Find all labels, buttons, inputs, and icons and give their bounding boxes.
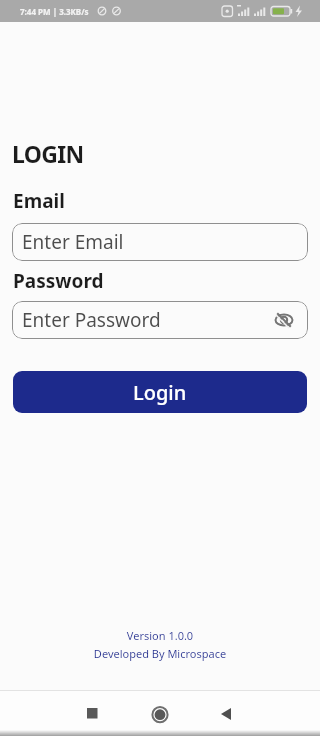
button[interactable] — [217, 707, 235, 725]
staticText: Version 1.0.0 — [0, 628, 320, 643]
staticText: Email — [13, 188, 65, 214]
button[interactable]: Login — [13, 371, 307, 413]
button[interactable] — [151, 705, 169, 723]
staticText: Enter Password — [22, 307, 161, 333]
button[interactable] — [84, 705, 101, 722]
staticText: Login — [133, 379, 187, 406]
staticText: 7:44 PM | 3.3KB/s — [20, 6, 89, 17]
staticText: Developed By Microspace — [0, 646, 320, 661]
staticText: LOGIN — [12, 138, 84, 169]
staticText: Enter Email — [22, 229, 124, 255]
staticText: Password — [13, 268, 104, 294]
button[interactable]: Enter Email — [12, 223, 308, 261]
button[interactable]: Enter Password — [12, 301, 308, 339]
